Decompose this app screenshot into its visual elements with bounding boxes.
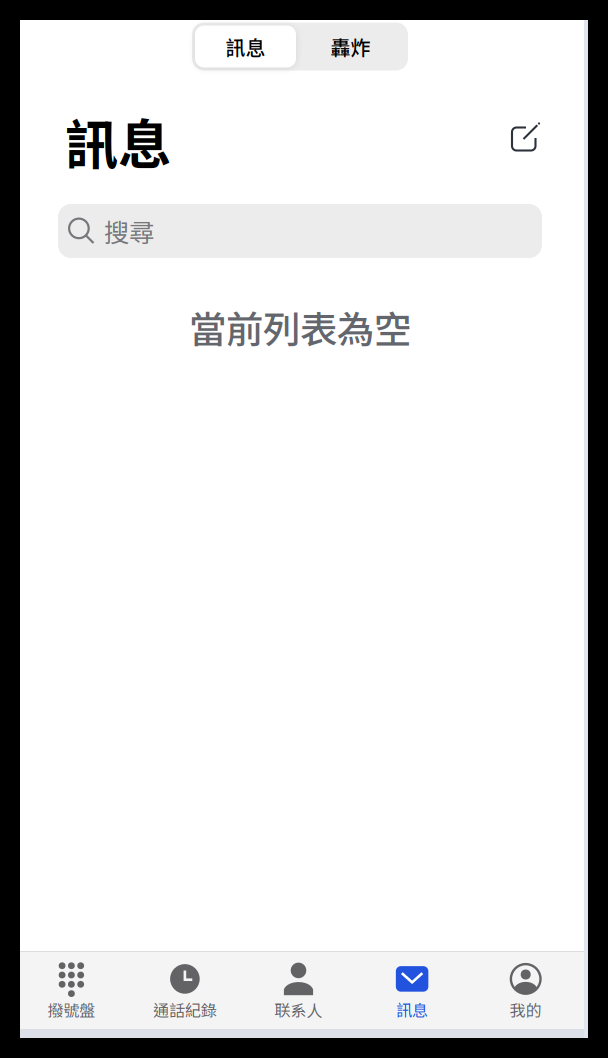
staticText: 訊息 — [396, 998, 428, 1021]
button[interactable]: 通話紀錄 — [128, 952, 242, 1029]
button[interactable]: 联系人 — [242, 952, 355, 1029]
button[interactable]: 訊息 — [355, 952, 469, 1029]
staticText: 轟炸 — [330, 32, 370, 61]
staticText: 我的 — [510, 998, 542, 1021]
staticText: 訊息 — [225, 32, 265, 61]
button[interactable]: 我的 — [469, 952, 582, 1029]
button[interactable]: 訊息 — [195, 25, 296, 67]
staticText: 訊息 — [65, 102, 171, 180]
button[interactable]: New Message — [512, 122, 540, 151]
staticText: 撥號盤 — [47, 998, 95, 1021]
button[interactable]: 撥號盤 — [14, 952, 128, 1029]
staticText: 通話紀錄 — [153, 998, 217, 1021]
staticText: 當前列表為空 — [189, 300, 411, 354]
staticText: 搜尋 — [104, 213, 154, 249]
button[interactable]: 轟炸 — [296, 25, 405, 67]
staticText: 联系人 — [274, 998, 322, 1021]
